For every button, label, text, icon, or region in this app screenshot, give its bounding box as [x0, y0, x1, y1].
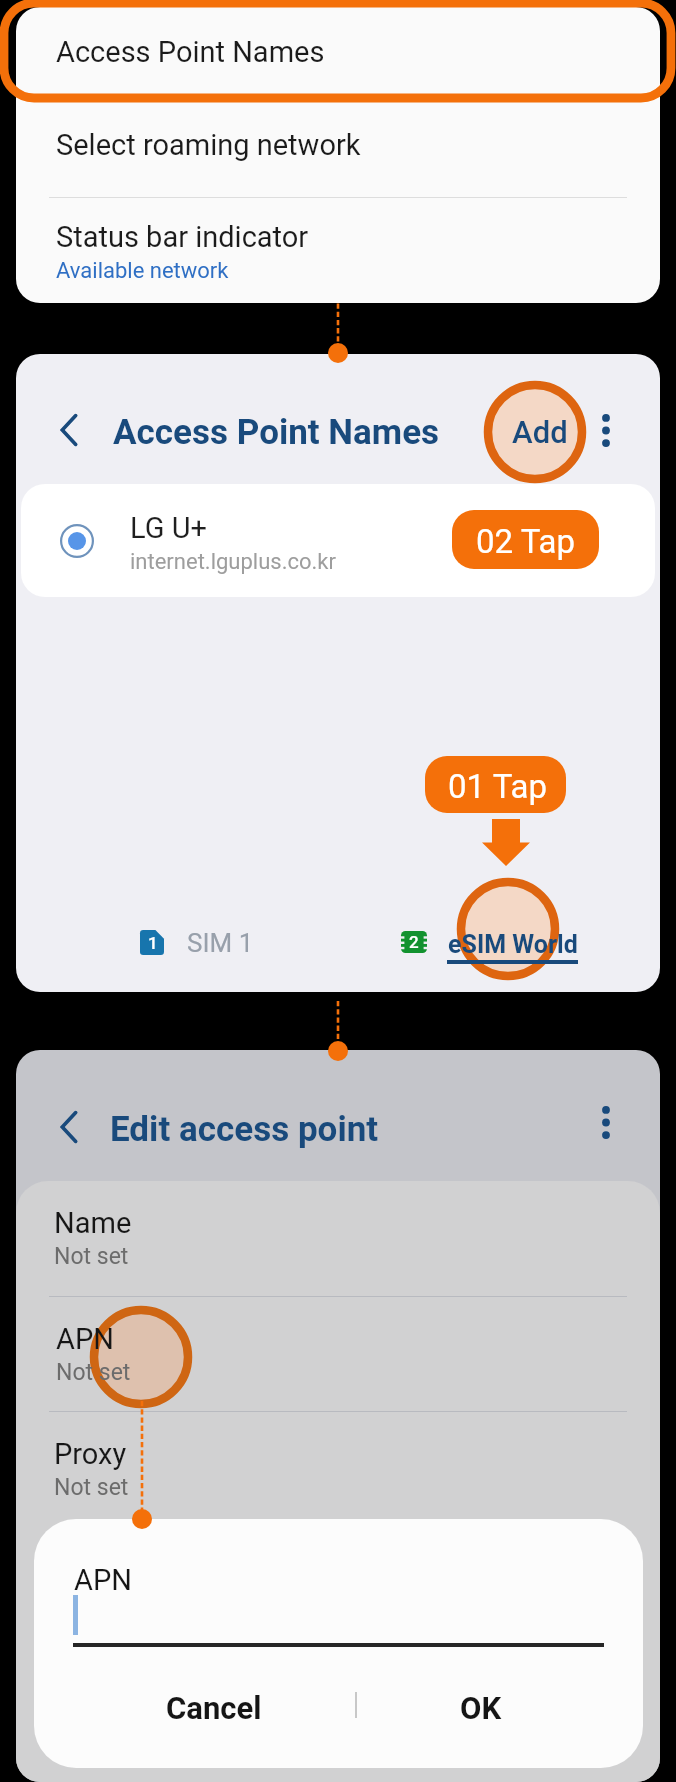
button[interactable]: More options	[596, 1106, 616, 1139]
button[interactable]: Status bar indicator	[16, 198, 660, 303]
button[interactable]: eSIM World	[440, 930, 590, 982]
staticText: Not set	[54, 1474, 129, 1501]
button[interactable]: Select roaming network	[16, 106, 660, 191]
staticText: Select roaming network	[56, 128, 361, 162]
button[interactable]: Proxy	[16, 1412, 660, 1528]
button[interactable]: More options	[596, 414, 616, 447]
staticText: LG U+	[130, 511, 207, 545]
staticText: APN	[56, 1322, 114, 1356]
staticText: Not set	[54, 1243, 129, 1270]
button[interactable]: APN	[16, 1297, 660, 1411]
staticText: 01 Tap	[448, 767, 547, 806]
button[interactable]: Access Point Names	[16, 7, 660, 106]
staticText: Proxy	[54, 1437, 127, 1471]
staticText: Not set	[56, 1359, 131, 1386]
staticText: Access Point Names	[113, 412, 440, 453]
staticText: eSIM World	[448, 930, 578, 959]
button[interactable]: 02 Tap	[452, 510, 599, 569]
staticText: Cancel	[166, 1690, 262, 1726]
button[interactable]: 01 Tap	[425, 756, 566, 813]
button[interactable]: LG U+	[21, 484, 655, 597]
staticText: Available network	[56, 258, 229, 284]
button[interactable]: Navigate up	[57, 1109, 81, 1145]
staticText: OK	[460, 1690, 502, 1726]
staticText: 02 Tap	[476, 522, 575, 561]
staticText: Status bar indicator	[56, 220, 309, 254]
staticText: 2	[409, 932, 419, 952]
staticText: Add	[512, 414, 568, 450]
staticText: APN	[74, 1563, 132, 1597]
button[interactable]: Cancel	[94, 1671, 334, 1745]
button[interactable]: OK	[371, 1671, 591, 1745]
staticText: 1	[148, 933, 158, 953]
button[interactable]: Add	[504, 405, 576, 459]
button[interactable]: Name	[16, 1181, 660, 1297]
staticText: internet.lguplus.co.kr	[130, 549, 336, 575]
staticText: Access Point Names	[56, 35, 325, 69]
staticText: SIM 1	[187, 928, 254, 958]
staticText: Edit access point	[110, 1109, 379, 1150]
button[interactable]: Navigate up	[57, 412, 81, 448]
staticText: Name	[54, 1206, 132, 1240]
